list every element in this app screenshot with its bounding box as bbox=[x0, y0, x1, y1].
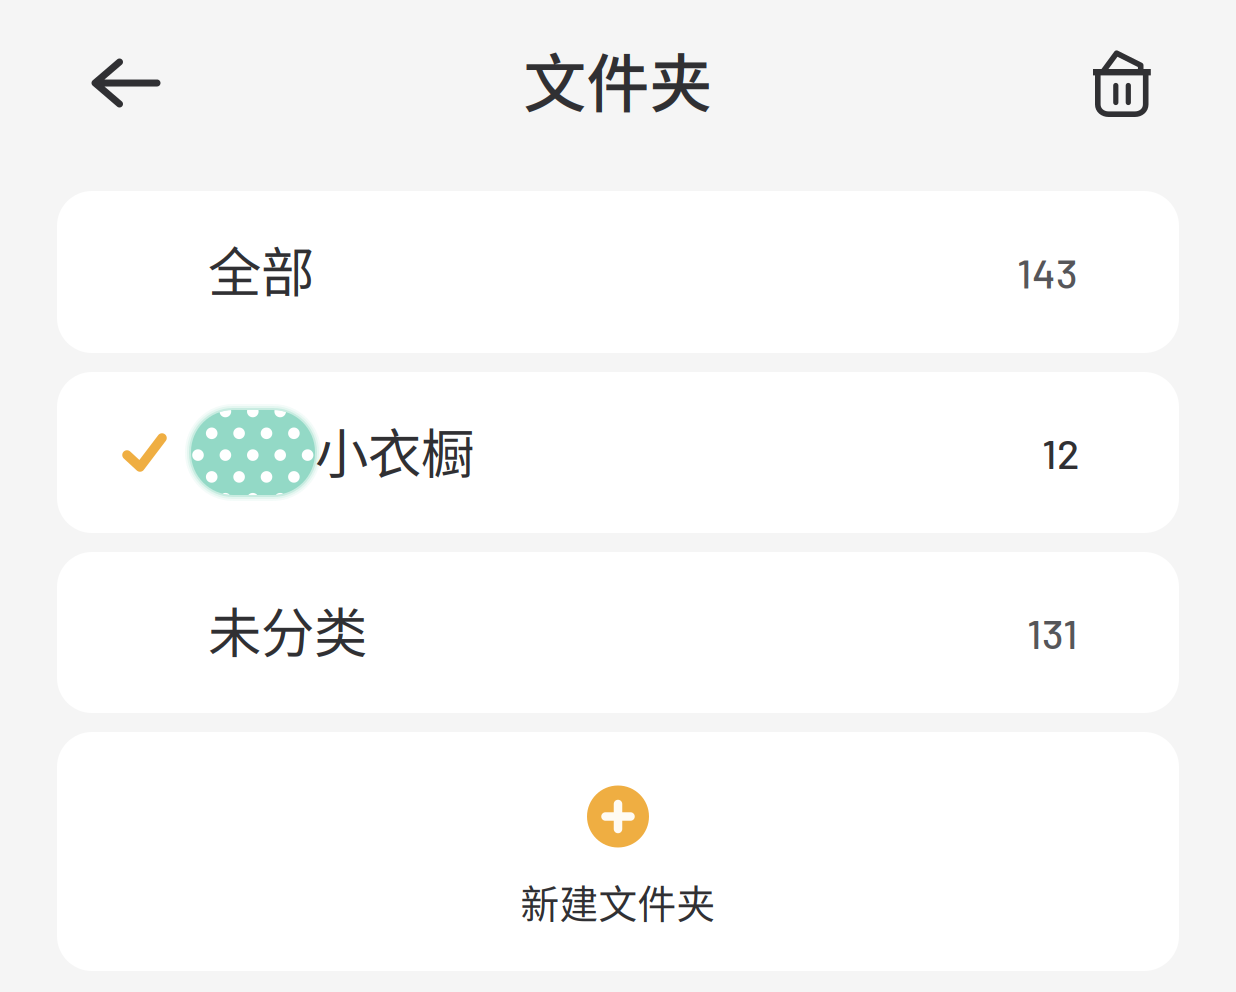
staticText: 小衣橱 bbox=[315, 412, 474, 489]
button[interactable]: 全部 bbox=[57, 191, 1179, 353]
staticText: 143 bbox=[1017, 247, 1078, 297]
button[interactable]: 小衣橱 bbox=[57, 372, 1179, 533]
staticText: 新建文件夹 bbox=[520, 873, 715, 929]
button[interactable]: 返回 bbox=[71, 28, 181, 138]
button[interactable]: 删除 bbox=[1067, 28, 1177, 138]
staticText: 全部 bbox=[208, 230, 314, 308]
staticText: 未分类 bbox=[208, 591, 367, 668]
button[interactable]: 未分类 bbox=[57, 552, 1179, 713]
staticText: 文件夹 bbox=[523, 34, 712, 124]
button[interactable]: 新建文件夹 bbox=[57, 732, 1179, 971]
staticText: 12 bbox=[1042, 428, 1079, 477]
staticText: 131 bbox=[1027, 608, 1078, 657]
